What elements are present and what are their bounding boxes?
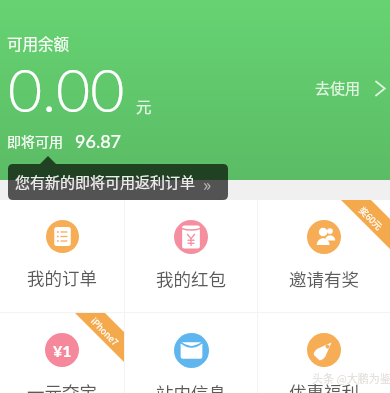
staticText: 即将可用 [7, 131, 63, 151]
staticText: 可用余额 [7, 32, 70, 54]
button[interactable]: ¥1 [0, 313, 124, 393]
staticText: 96.87 [75, 130, 122, 152]
staticText: 您有新的即将可用返利订单 [15, 171, 196, 193]
button[interactable]: 站内信息 [125, 313, 257, 393]
staticText: 邀请有奖 [289, 266, 359, 291]
staticText: ¥1 [53, 341, 72, 360]
button[interactable]: 您有新的即将可用返利订单 [8, 156, 228, 200]
staticText: 我的红包 [156, 266, 226, 291]
button[interactable]: 我的红包 [125, 200, 257, 312]
staticText: 站内信息 [156, 380, 226, 393]
staticText: 0.00 [8, 54, 125, 125]
button[interactable]: 去使用 [301, 71, 390, 105]
other: Go to use balance [374, 80, 386, 97]
staticText: 头条 @大鹏为鉴 [312, 370, 390, 386]
button[interactable]: 邀请有奖 [258, 200, 390, 312]
button[interactable]: 我的订单 [0, 200, 124, 312]
staticText: iPhone7 [88, 315, 122, 349]
staticText: 奖60元 [356, 204, 385, 233]
staticText: 元 [136, 95, 152, 117]
staticText: 去使用 [315, 77, 361, 99]
staticText: 优惠福利 [289, 379, 359, 393]
staticText: 我的订单 [27, 265, 97, 290]
button[interactable]: 优惠福利 [258, 313, 390, 393]
staticText: 一元夺宝 [27, 379, 97, 393]
staticText: » [203, 171, 212, 196]
